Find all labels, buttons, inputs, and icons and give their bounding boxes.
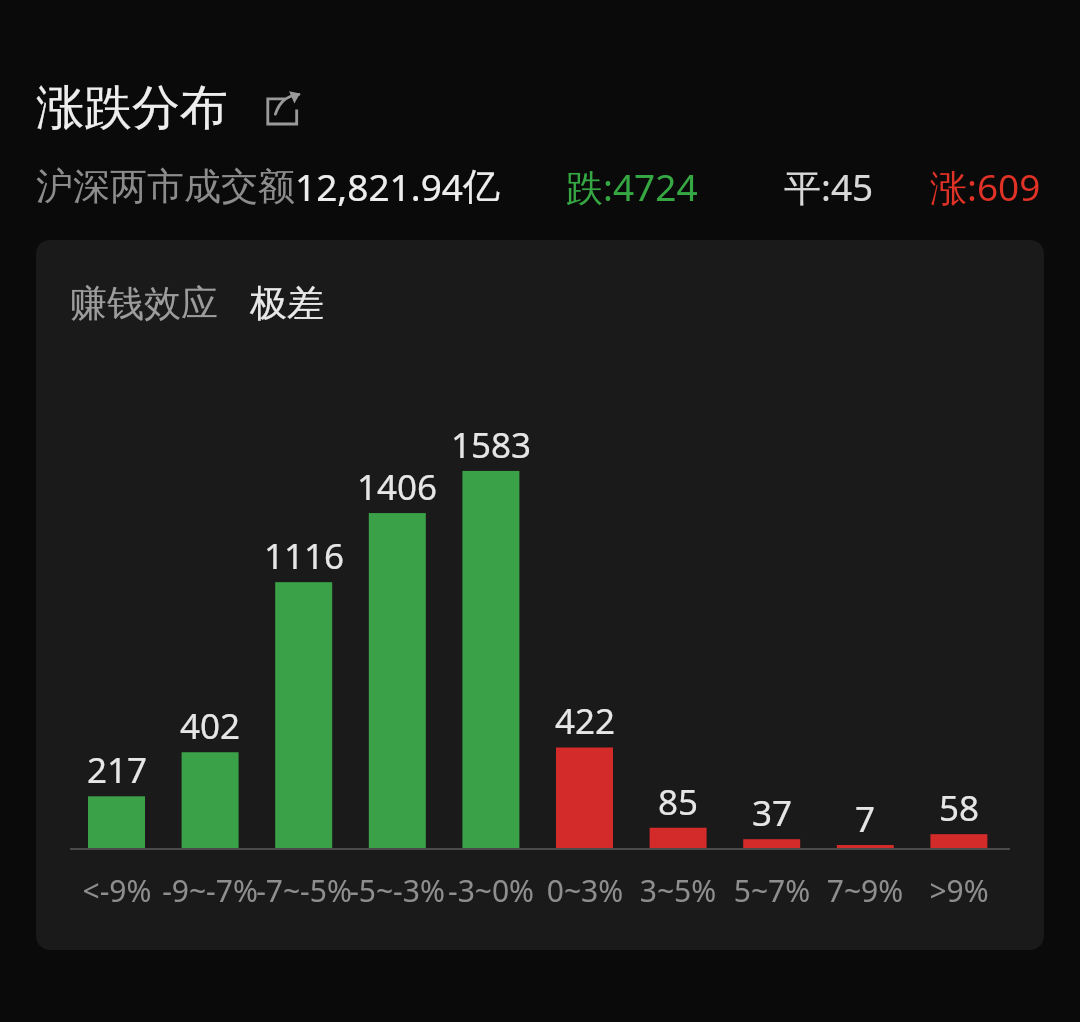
button[interactable]: 赚钱效应 bbox=[70, 280, 218, 327]
staticText: -5~-3% bbox=[322, 870, 472, 911]
staticText: 极差 bbox=[250, 280, 324, 327]
staticText: 5~7% bbox=[697, 870, 847, 911]
staticText: 402 bbox=[140, 702, 280, 750]
staticText: 85 bbox=[608, 778, 748, 826]
staticText: 7~9% bbox=[790, 870, 940, 911]
staticText: 12,821.94 bbox=[295, 161, 463, 211]
staticText: -7~-5% bbox=[229, 870, 379, 911]
staticText: 平:45 bbox=[784, 161, 874, 212]
staticText: -3~0% bbox=[416, 870, 566, 911]
staticText: 1116 bbox=[234, 532, 374, 580]
staticText: 1406 bbox=[327, 463, 467, 511]
staticText: 亿 bbox=[463, 163, 500, 210]
staticText: 涨:609 bbox=[930, 161, 1041, 212]
staticText: 422 bbox=[515, 697, 655, 745]
staticText: 跌:4724 bbox=[566, 161, 698, 212]
button[interactable]: 极差 bbox=[250, 280, 324, 327]
staticText: 沪深两市成交额 bbox=[36, 163, 295, 210]
staticText: 7 bbox=[795, 795, 935, 843]
staticText: 37 bbox=[702, 789, 842, 837]
staticText: 0~3% bbox=[510, 870, 660, 911]
staticText: -9~-7% bbox=[135, 870, 285, 911]
staticText: >9% bbox=[884, 870, 1034, 911]
staticText: 赚钱效应 bbox=[70, 280, 218, 327]
staticText: <-9% bbox=[42, 870, 192, 911]
staticText: 58 bbox=[889, 784, 1029, 832]
button[interactable]: Share bbox=[260, 85, 306, 131]
staticText: 3~5% bbox=[603, 870, 753, 911]
staticText: 1583 bbox=[421, 421, 561, 469]
staticText: 涨跌分布 bbox=[36, 78, 228, 138]
staticText: 217 bbox=[47, 746, 187, 794]
